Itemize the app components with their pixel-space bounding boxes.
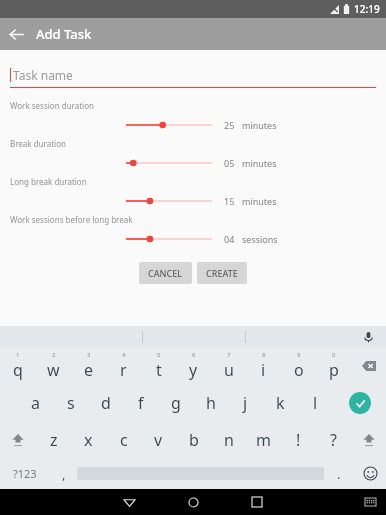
button[interactable]: 7 [211,347,246,384]
staticText: f [138,392,144,414]
staticText: 05 [224,157,235,169]
staticText: 15 [224,195,235,207]
staticText: w [47,359,60,381]
button[interactable]: CANCEL [139,262,192,284]
button[interactable]: Shift [351,421,386,458]
button[interactable]: Back [118,491,140,513]
staticText: i [261,359,266,381]
staticText: minutes [242,195,277,207]
staticText: Work sessions before long break [10,214,133,225]
staticText: Break duration [10,138,66,149]
staticText: 25 [224,119,235,131]
button[interactable]: Recents [246,491,268,513]
button[interactable]: Task name [10,62,376,88]
button[interactable]: 4 [106,347,141,384]
staticText: , [62,465,66,483]
staticText: o [294,359,304,381]
staticText: Long break duration [10,176,87,187]
staticText: ?123 [13,466,37,481]
button[interactable]: , [50,458,77,489]
button[interactable]: CREATE [197,262,247,284]
staticText: r [120,359,127,381]
button[interactable]: Home [182,491,204,513]
staticText: 7 [227,351,231,359]
button[interactable]: 5 [141,347,176,384]
button[interactable]: Switch keyboard [360,492,380,512]
button[interactable]: Voice input [360,329,376,345]
button[interactable]: l [298,384,333,421]
staticText: CANCEL [148,267,183,279]
button[interactable]: Enter [333,384,386,421]
staticText: 04 [224,233,235,245]
staticText: Task name [13,67,73,83]
staticText: h [206,392,216,414]
button[interactable]: f [123,384,158,421]
staticText: n [224,429,234,451]
button[interactable] [126,229,212,249]
staticText: CREATE [206,267,238,279]
button[interactable]: ! [281,421,316,458]
button[interactable]: d [88,384,123,421]
staticText: t [156,359,162,381]
staticText: ! [296,429,301,451]
staticText: x [84,429,93,451]
button[interactable]: s [53,384,88,421]
staticText: minutes [242,157,277,169]
staticText: 2 [52,351,56,359]
staticText: Add Task [36,25,92,43]
button[interactable]: 6 [176,347,211,384]
staticText: e [84,359,94,381]
button[interactable]: Emoji [354,458,386,489]
button[interactable]: g [158,384,193,421]
staticText: 0 [332,351,336,359]
staticText: m [256,429,271,451]
staticText: ? [330,429,337,451]
staticText: v [154,429,163,451]
staticText: l [313,392,318,414]
button[interactable] [126,153,212,173]
button[interactable]: j [228,384,263,421]
button[interactable]: v [141,421,176,458]
button[interactable]: z [36,421,71,458]
staticText: a [31,392,40,414]
button[interactable]: n [211,421,246,458]
button[interactable]: . [324,458,354,489]
staticText: s [67,392,75,414]
staticText: b [189,429,199,451]
staticText: 5 [157,351,161,359]
staticText: c [120,429,128,451]
button[interactable]: 2 [36,347,71,384]
staticText: . [337,465,341,483]
staticText: g [171,392,181,414]
button[interactable]: x [71,421,106,458]
button[interactable]: a [18,384,53,421]
button[interactable]: 0 [316,347,351,384]
button[interactable]: 3 [71,347,106,384]
staticText: minutes [242,119,277,131]
staticText: 12:19 [354,2,380,16]
button[interactable] [126,191,212,211]
staticText: y [189,359,198,381]
staticText: 1 [16,351,20,359]
button[interactable]: Shift [0,421,36,458]
button[interactable]: 1 [0,347,36,384]
button[interactable]: h [193,384,228,421]
staticText: Work session duration [10,100,94,111]
button[interactable]: Backspace [351,347,386,384]
staticText: p [329,359,339,381]
button[interactable]: m [246,421,281,458]
button[interactable]: ? [316,421,351,458]
staticText: z [50,429,58,451]
button[interactable]: 8 [246,347,281,384]
button[interactable]: b [176,421,211,458]
button[interactable]: 9 [281,347,316,384]
staticText: q [13,359,23,381]
button[interactable]: k [263,384,298,421]
button[interactable]: ?123 [0,458,50,489]
button[interactable] [126,115,212,135]
button[interactable]: Back [0,18,32,50]
button[interactable]: c [106,421,141,458]
staticText: j [243,392,248,414]
staticText: 6 [192,351,196,359]
